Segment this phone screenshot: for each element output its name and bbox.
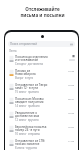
staticText: 8 июня · вручено [15, 146, 38, 150]
staticText: Уведомление о доставке письма [15, 111, 40, 118]
staticText: Письмо из Новосибирска [15, 69, 36, 76]
button[interactable]: Посылка из Москвы ожидает получения [5, 96, 78, 110]
staticText: 10 июня · отправка [15, 132, 40, 136]
staticText: Посылка до отделения и отслеживание [15, 55, 48, 62]
staticText: 15 июня · принято [15, 90, 39, 94]
staticText: Лента [9, 49, 17, 53]
staticText: 11:55 [68, 139, 75, 142]
staticText: 12:30 [68, 69, 75, 72]
staticText: Посылка из Москвы ожидает получения [15, 97, 44, 104]
staticText: письма и посылки [20, 12, 65, 18]
staticText: Вчера · в пути [15, 76, 34, 80]
staticText: 14 июня · прибыло [15, 104, 40, 108]
staticText: 18:22 [68, 111, 75, 114]
staticText: 10:05 [68, 83, 75, 86]
button[interactable]: Европейская посылка номер 24 · в пути [5, 124, 78, 138]
staticText: Сегодня · доставлена [15, 62, 43, 66]
staticText: 12 июня · вручено [15, 118, 39, 122]
button[interactable]: Уведомление о доставке письма [5, 110, 78, 124]
staticText: 16:07 [68, 125, 75, 128]
staticText: Отправление из Твери заказ 12 · в пути [15, 83, 48, 90]
staticText: 09:41 [68, 97, 75, 100]
button[interactable]: Посылка до отделения и отслеживание [5, 54, 78, 68]
button[interactable]: Отправление из СПб письмо заказное [5, 138, 78, 150]
button[interactable]: Поиск отправлений [8, 41, 75, 47]
staticText: Поиск отправлений [10, 42, 37, 46]
button[interactable]: Отправление из Твери заказ 12 · в пути [5, 82, 78, 96]
staticText: Отслеживайте [25, 6, 60, 12]
button[interactable]: Письмо из Новосибирска [5, 68, 78, 82]
staticText: Отправление из СПб письмо заказное [15, 139, 45, 146]
staticText: Европейская посылка номер 24 · в пути [15, 125, 47, 132]
